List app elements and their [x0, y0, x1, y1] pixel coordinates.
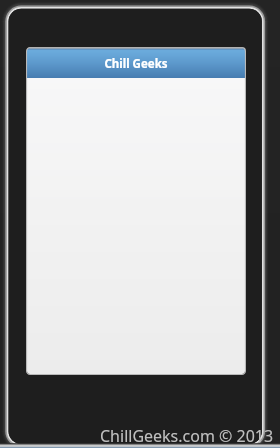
button[interactable]: Chill Geeks — [27, 48, 245, 78]
staticText: Chill Geeks — [104, 56, 168, 72]
staticText: ChillGeeks.com © 2013 — [100, 425, 274, 447]
